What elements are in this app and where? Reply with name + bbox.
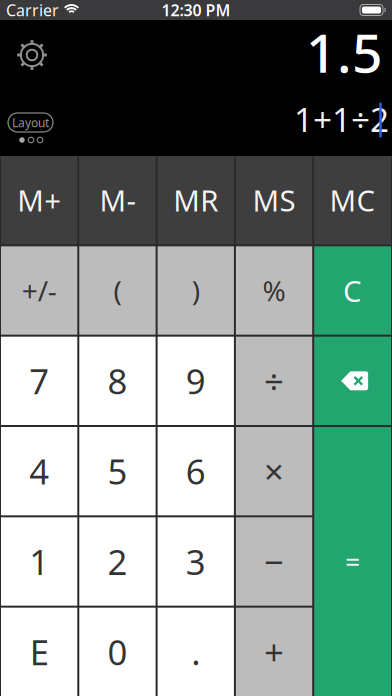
staticText: 5 xyxy=(107,448,127,494)
staticText: 1+1÷2 xyxy=(294,97,389,141)
button[interactable]: M+ xyxy=(1,156,77,244)
staticText: + xyxy=(264,629,284,675)
button[interactable]: 8 xyxy=(79,337,156,425)
staticText: ) xyxy=(192,272,200,309)
staticText: = xyxy=(345,544,360,579)
staticText: 4 xyxy=(29,448,49,494)
button[interactable]: MR xyxy=(158,156,234,244)
staticText: × xyxy=(264,448,284,494)
staticText: Carrier xyxy=(6,0,59,21)
staticText: MR xyxy=(173,181,218,220)
button[interactable]: 4 xyxy=(1,427,77,515)
button[interactable]: % xyxy=(236,246,312,335)
button[interactable]: 5 xyxy=(79,427,156,515)
button[interactable]: ) xyxy=(158,246,234,335)
button[interactable]: − xyxy=(236,517,312,606)
button[interactable]: ÷ xyxy=(236,337,312,425)
staticText: % xyxy=(262,272,285,309)
staticText: E xyxy=(30,629,49,675)
button[interactable]: 0 xyxy=(79,608,156,696)
staticText: M+ xyxy=(17,181,61,220)
button[interactable]: 9 xyxy=(158,337,234,425)
button[interactable]: E xyxy=(1,608,77,696)
button[interactable]: MC xyxy=(314,156,391,244)
staticText: Layout xyxy=(12,114,49,130)
staticText: 0 xyxy=(107,629,127,675)
button[interactable]: +/- xyxy=(1,246,77,335)
button[interactable]: . xyxy=(158,608,234,696)
staticText: 12:30 PM xyxy=(161,0,230,21)
button[interactable]: M- xyxy=(79,156,156,244)
button[interactable]: = xyxy=(314,427,391,696)
staticText: 1 xyxy=(29,538,49,584)
button[interactable]: 2 xyxy=(79,517,156,606)
staticText: 2 xyxy=(107,538,127,584)
staticText: ( xyxy=(113,272,121,309)
staticText: 7 xyxy=(29,358,49,404)
staticText: 8 xyxy=(107,358,127,404)
staticText: − xyxy=(264,538,284,584)
staticText: 1.5 xyxy=(306,17,383,87)
button[interactable]: MS xyxy=(236,156,312,244)
button[interactable]: Delete xyxy=(314,337,391,425)
button[interactable]: + xyxy=(236,608,312,696)
staticText: +/- xyxy=(22,272,57,309)
button[interactable]: 3 xyxy=(158,517,234,606)
button[interactable]: × xyxy=(236,427,312,515)
staticText: 6 xyxy=(186,448,206,494)
staticText: ÷ xyxy=(264,358,284,404)
button[interactable]: 1 xyxy=(1,517,77,606)
button[interactable]: Layout xyxy=(8,113,53,132)
staticText: . xyxy=(191,629,200,675)
button[interactable]: 7 xyxy=(1,337,77,425)
staticText: 3 xyxy=(186,538,206,584)
button[interactable]: C xyxy=(314,246,391,335)
staticText: M- xyxy=(99,181,135,220)
button[interactable]: ( xyxy=(79,246,156,335)
button[interactable]: 6 xyxy=(158,427,234,515)
staticText: MC xyxy=(330,181,376,220)
staticText: MS xyxy=(252,181,295,220)
button[interactable]: Settings xyxy=(16,39,47,70)
staticText: 9 xyxy=(186,358,206,404)
staticText: C xyxy=(343,271,362,310)
